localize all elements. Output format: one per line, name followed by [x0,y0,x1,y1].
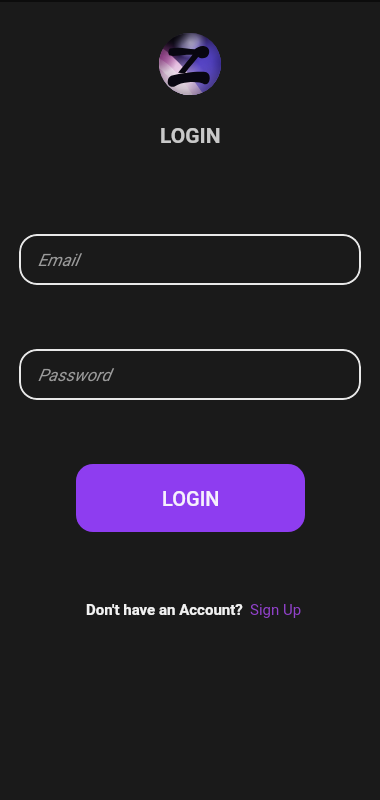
staticText: Don't have an Account? [86,601,243,619]
staticText: Sign Up [250,601,302,619]
other: App logo [159,33,221,95]
staticText: LOGIN [160,124,221,149]
button[interactable]: Email [19,234,361,285]
button[interactable]: Sign Up [250,601,302,619]
staticText: Email [38,250,79,270]
staticText: Password [38,365,111,385]
button[interactable]: Password [19,349,361,400]
staticText: LOGIN [162,487,220,510]
button[interactable]: LOGIN [76,464,305,532]
